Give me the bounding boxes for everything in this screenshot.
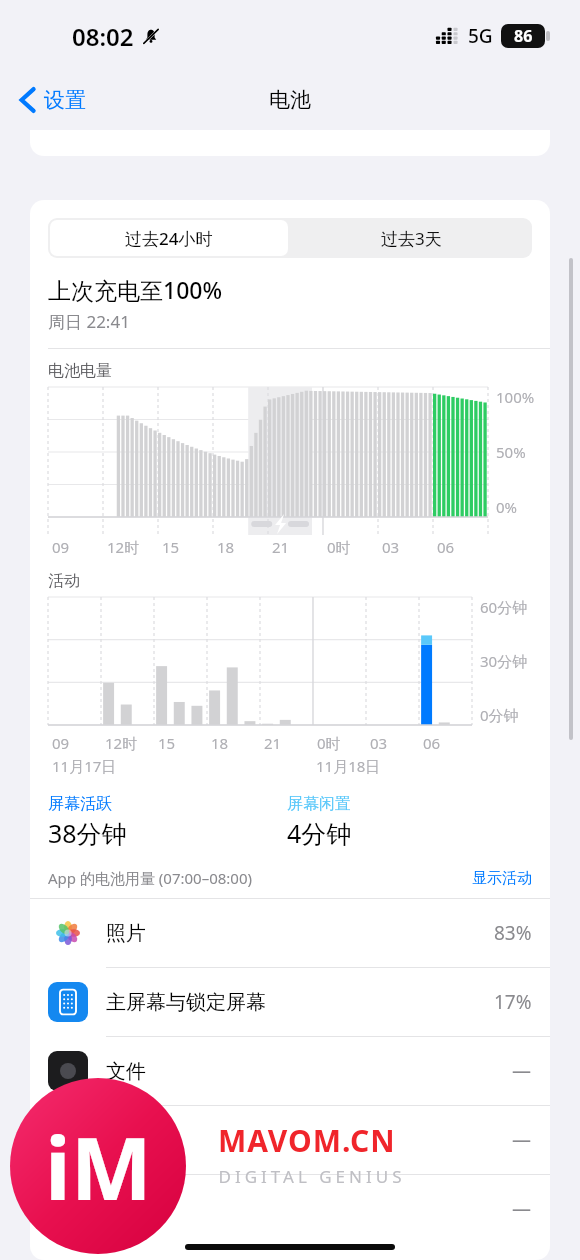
- staticText: 21: [264, 733, 282, 753]
- staticText: 活动: [48, 571, 80, 591]
- staticText: 照片: [106, 921, 146, 946]
- staticText: 09: [52, 733, 70, 753]
- staticText: 0分钟: [480, 705, 519, 725]
- staticText: 06: [437, 537, 455, 557]
- staticText: 电池电量: [48, 361, 112, 381]
- staticText: iM: [45, 1108, 152, 1225]
- staticText: 4分钟: [287, 816, 352, 850]
- staticText: 备忘录: [106, 1128, 166, 1153]
- staticText: 云音乐: [106, 1197, 166, 1222]
- button[interactable]: 云音乐: [30, 1175, 550, 1243]
- staticText: 屏幕闲置: [287, 794, 351, 814]
- staticText: 0%: [496, 497, 518, 517]
- staticText: 03: [370, 733, 388, 753]
- staticText: 5G: [468, 23, 493, 49]
- button[interactable]: 过去24小时: [50, 220, 288, 256]
- staticText: 15: [162, 537, 180, 557]
- staticText: DIGITAL GENIUS: [218, 1165, 406, 1188]
- staticText: 50%: [496, 442, 526, 462]
- staticText: 83%: [494, 920, 532, 946]
- staticText: 100%: [496, 387, 535, 407]
- staticText: —: [512, 1127, 532, 1153]
- staticText: 过去3天: [381, 227, 442, 250]
- staticText: 12时: [105, 733, 138, 753]
- staticText: 18: [211, 733, 229, 753]
- staticText: 18: [217, 537, 235, 557]
- staticText: 0时: [317, 733, 341, 753]
- staticText: 30分钟: [480, 651, 528, 671]
- staticText: 03: [382, 537, 400, 557]
- staticText: 过去24小时: [125, 227, 213, 250]
- staticText: 周日 22:41: [48, 310, 130, 333]
- staticText: 电池: [269, 87, 311, 113]
- button[interactable]: 设置: [14, 83, 92, 117]
- button[interactable]: 照片: [30, 899, 550, 968]
- staticText: 11月17日: [52, 756, 117, 776]
- button[interactable]: 主屏幕与锁定屏幕: [30, 968, 550, 1037]
- staticText: —: [512, 1196, 532, 1222]
- staticText: 12时: [107, 537, 140, 557]
- staticText: 屏幕活跃: [48, 794, 112, 814]
- staticText: 0时: [327, 537, 351, 557]
- staticText: 60分钟: [480, 597, 528, 617]
- staticText: 08:02: [72, 20, 134, 53]
- staticText: 显示活动: [472, 869, 532, 888]
- staticText: —: [512, 1058, 532, 1084]
- button[interactable]: 备忘录: [30, 1106, 550, 1175]
- staticText: App 的电池用量 (07:00–08:00): [48, 868, 253, 888]
- staticText: 17%: [494, 989, 532, 1015]
- staticText: 09: [52, 537, 70, 557]
- staticText: 设置: [44, 87, 86, 113]
- button[interactable]: 显示活动: [472, 869, 532, 888]
- staticText: 主屏幕与锁定屏幕: [106, 990, 266, 1015]
- staticText: MAVOM.CN: [218, 1120, 396, 1161]
- staticText: 11月18日: [316, 756, 381, 776]
- staticText: 21: [272, 537, 290, 557]
- staticText: 上次充电至100%: [48, 274, 223, 305]
- staticText: 文件: [106, 1059, 146, 1084]
- staticText: 86: [514, 25, 533, 47]
- button[interactable]: 过去3天: [290, 218, 532, 258]
- staticText: 06: [423, 733, 441, 753]
- button[interactable]: 文件: [30, 1037, 550, 1106]
- staticText: 15: [158, 733, 176, 753]
- staticText: 38分钟: [48, 816, 127, 850]
